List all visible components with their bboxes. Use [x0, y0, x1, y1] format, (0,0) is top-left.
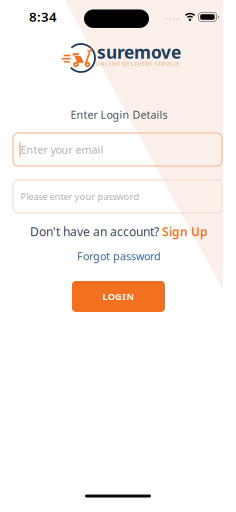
- button[interactable]: Enter your email: [13, 133, 222, 166]
- button[interactable]: Sign Up: [162, 223, 208, 239]
- staticText: Sign Up: [162, 223, 208, 239]
- staticText: suremove: [97, 40, 181, 63]
- button[interactable]: Please enter your password: [13, 180, 222, 213]
- staticText: Please enter your password: [20, 190, 139, 203]
- staticText: Enter your email: [20, 142, 103, 157]
- staticText: 8:34: [29, 8, 57, 25]
- button[interactable]: Forgot password: [77, 249, 161, 263]
- button[interactable]: LOGIN: [72, 281, 165, 312]
- staticText: Don't have an account?: [30, 223, 159, 239]
- staticText: Forgot password: [77, 249, 161, 263]
- staticText: Enter Login Details: [70, 107, 167, 122]
- staticText: ONLINE DELIVERY SERVICE: [96, 60, 179, 68]
- staticText: LOGIN: [102, 290, 135, 303]
